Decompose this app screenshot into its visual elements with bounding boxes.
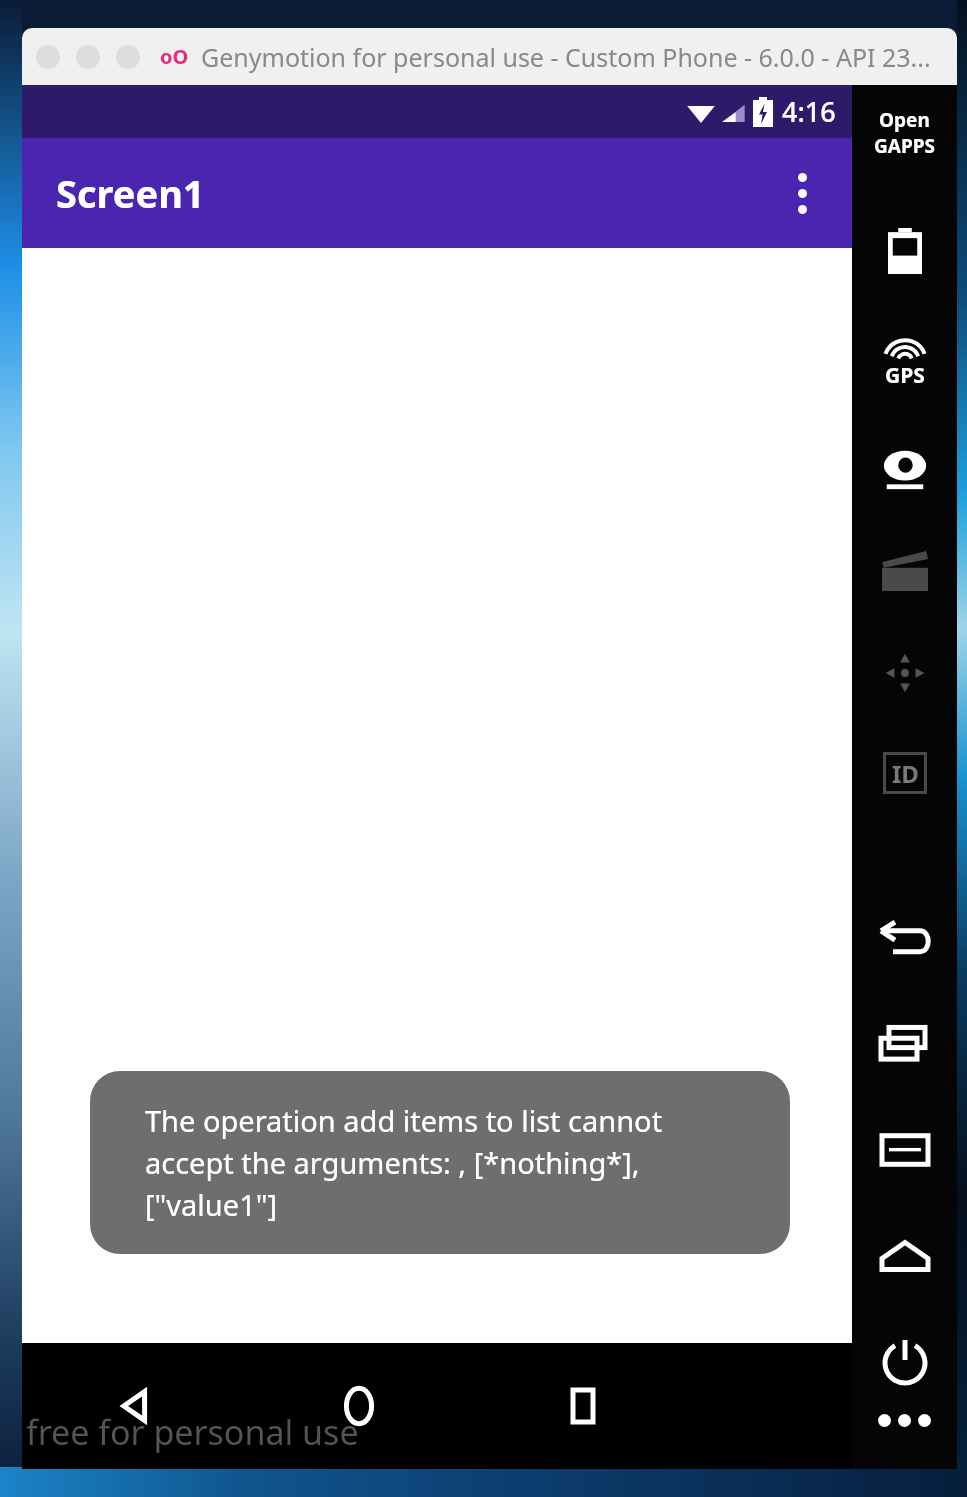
staticText: Genymotion for personal use - Custom Pho… [201, 40, 931, 74]
button[interactable]: Battery [879, 225, 931, 277]
button[interactable]: Recent apps [471, 1343, 695, 1469]
button[interactable]: Power [876, 1334, 934, 1392]
staticText: oO [160, 43, 189, 70]
staticText: The operation add items to list cannot a… [145, 1101, 735, 1224]
staticText: Screen1 [56, 167, 205, 219]
button[interactable]: Recent apps [877, 1016, 933, 1072]
staticText: free for personal use [26, 1409, 359, 1455]
button[interactable]: Camera [878, 442, 932, 496]
button[interactable]: Open GAPPS [874, 107, 935, 159]
button[interactable]: Home [247, 1343, 471, 1469]
button[interactable]: Rotate [878, 646, 932, 700]
button[interactable]: Back [22, 1343, 247, 1469]
button[interactable]: Window button [76, 45, 100, 69]
staticText: GPS [885, 361, 925, 390]
button[interactable]: Screen record [878, 544, 932, 598]
staticText: GAPPS [874, 133, 935, 159]
staticText: ID [892, 757, 919, 790]
button[interactable]: More [878, 1414, 931, 1427]
button[interactable]: Menu [877, 1122, 933, 1178]
button[interactable]: Identifiers [878, 746, 932, 800]
button[interactable]: GPS [885, 337, 925, 390]
staticText: Open [879, 107, 930, 133]
button[interactable]: Home [877, 1228, 933, 1284]
staticText: 4:16 [782, 93, 836, 130]
button[interactable]: Back [877, 910, 933, 966]
button[interactable]: Window button [116, 45, 140, 69]
button[interactable]: More options [772, 163, 832, 223]
button[interactable]: Window button [36, 45, 60, 69]
